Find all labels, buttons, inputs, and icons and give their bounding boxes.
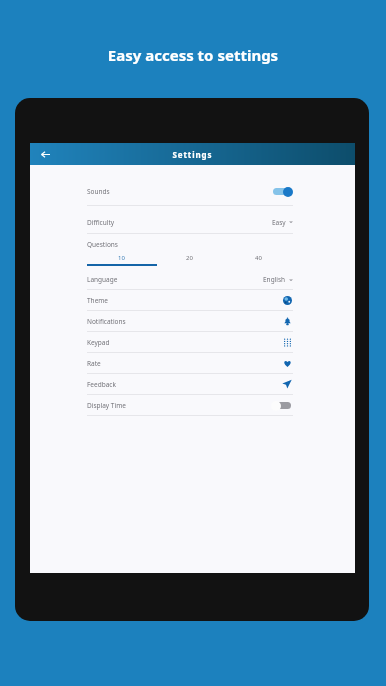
button[interactable]: 20	[155, 251, 224, 264]
button[interactable]: Rate	[87, 353, 293, 373]
staticText: Settings	[30, 149, 355, 160]
button[interactable]: 10	[87, 251, 155, 264]
button[interactable]: Display Time	[87, 395, 293, 415]
staticText: Easy	[272, 218, 286, 227]
staticText: Easy access to settings	[0, 45, 386, 65]
staticText: 20	[186, 254, 193, 262]
button[interactable]: 40	[224, 251, 293, 264]
staticText: Notifications	[87, 317, 281, 326]
staticText: 10	[118, 254, 125, 262]
staticText: Language	[87, 275, 263, 284]
button[interactable]: Feedback	[87, 374, 293, 394]
button[interactable]: Questions	[87, 238, 293, 251]
staticText: Display Time	[87, 401, 271, 410]
button[interactable]: Difficulty	[87, 211, 293, 233]
button[interactable]: Notifications	[87, 311, 293, 331]
button[interactable]: Language	[87, 270, 293, 289]
staticText: Keypad	[87, 338, 281, 347]
button[interactable]: Sounds	[87, 177, 293, 205]
staticText: Sounds	[87, 187, 271, 196]
staticText: Theme	[87, 296, 281, 305]
staticText: Difficulty	[87, 218, 272, 227]
staticText: Feedback	[87, 380, 281, 389]
staticText: 40	[255, 254, 262, 262]
staticText: Questions	[87, 240, 118, 249]
staticText: Rate	[87, 359, 281, 368]
staticText: English	[263, 275, 286, 284]
button[interactable]: Back	[37, 146, 53, 162]
button[interactable]: Theme	[87, 290, 293, 310]
button[interactable]: Keypad	[87, 332, 293, 352]
